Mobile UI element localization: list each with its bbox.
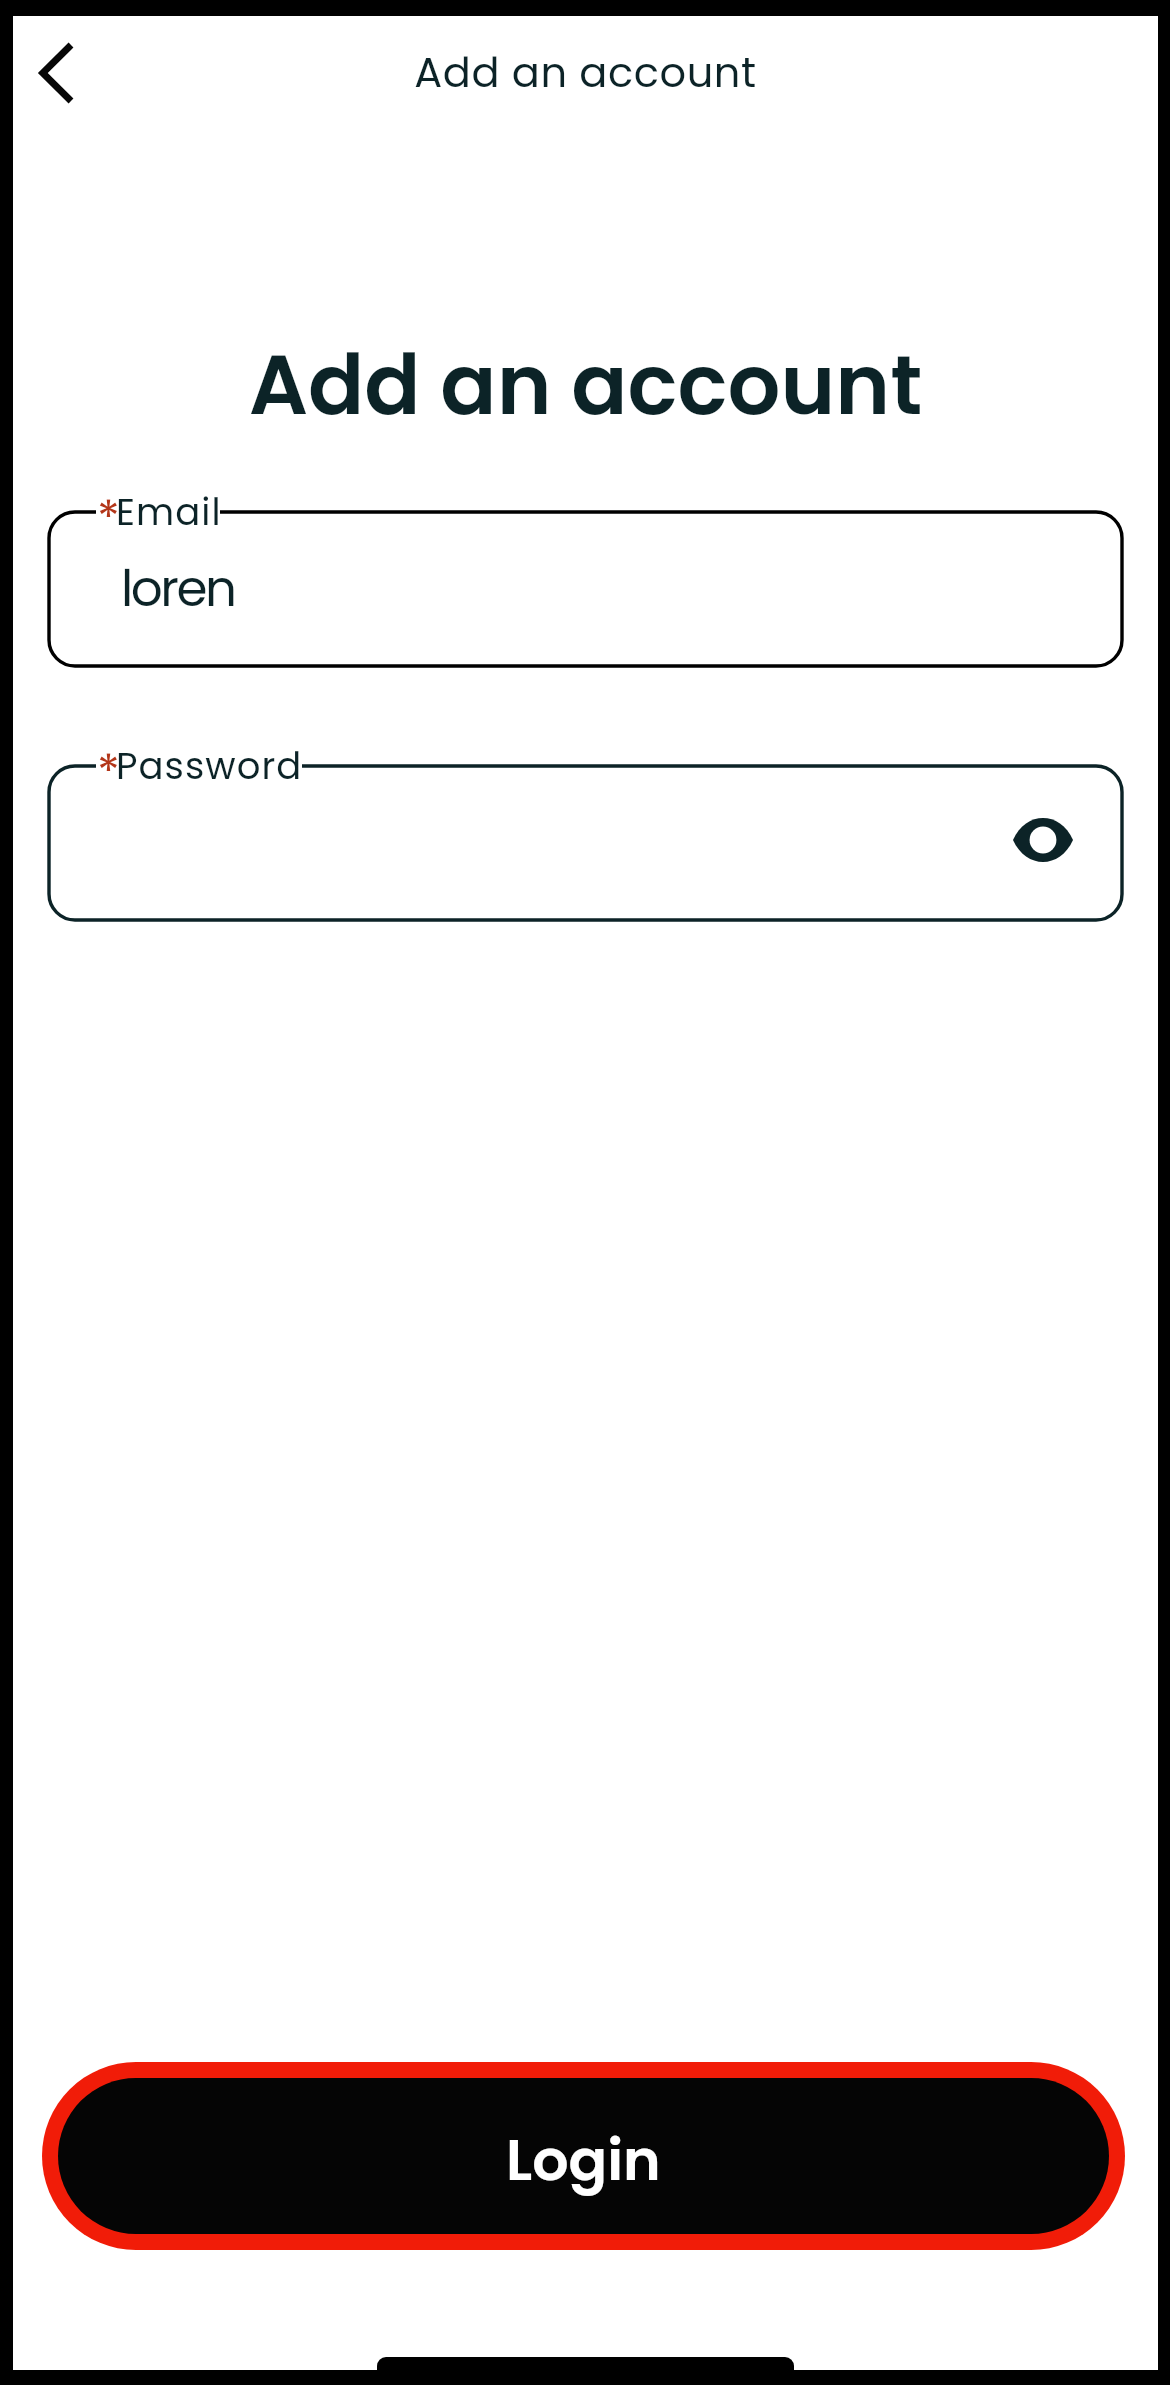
staticText: Login [506,2120,661,2200]
staticText: * [97,485,120,551]
staticText: * [97,739,120,805]
button[interactable]: Back [10,28,100,118]
button[interactable]: Show password [1000,797,1086,883]
staticText: Password [116,740,303,792]
staticText: Add an account [13,327,1158,443]
button[interactable]: * [49,512,1122,666]
staticText: loren [121,554,235,624]
staticText: Email [116,486,222,538]
staticText: Add an account [13,43,1158,101]
button[interactable]: Login [58,2078,1109,2234]
button[interactable]: * [49,766,1122,920]
